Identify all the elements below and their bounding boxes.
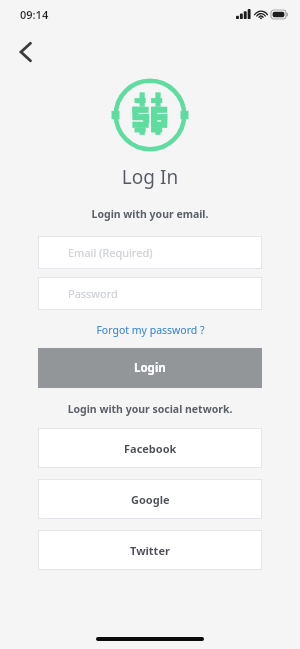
- button[interactable]: Forgot my password ?: [0, 323, 300, 337]
- button[interactable]: Back: [6, 32, 46, 72]
- staticText: Facebook: [124, 441, 177, 456]
- button[interactable]: Password: [38, 277, 262, 310]
- button[interactable]: Facebook: [38, 428, 262, 468]
- staticText: Google: [131, 492, 170, 507]
- button[interactable]: Email (Required): [38, 236, 262, 269]
- button[interactable]: Login: [38, 348, 262, 388]
- staticText: Email (Required): [68, 245, 153, 260]
- staticText: Login: [134, 360, 166, 376]
- staticText: 09:14: [20, 7, 49, 22]
- staticText: Twitter: [130, 543, 170, 558]
- staticText: Log In: [0, 164, 300, 190]
- staticText: Password: [68, 286, 118, 301]
- button[interactable]: Twitter: [38, 530, 262, 570]
- staticText: Forgot my password ?: [96, 323, 205, 337]
- staticText: Login with your email.: [0, 207, 300, 221]
- staticText: Login with your social network.: [0, 402, 300, 416]
- button[interactable]: Google: [38, 479, 262, 519]
